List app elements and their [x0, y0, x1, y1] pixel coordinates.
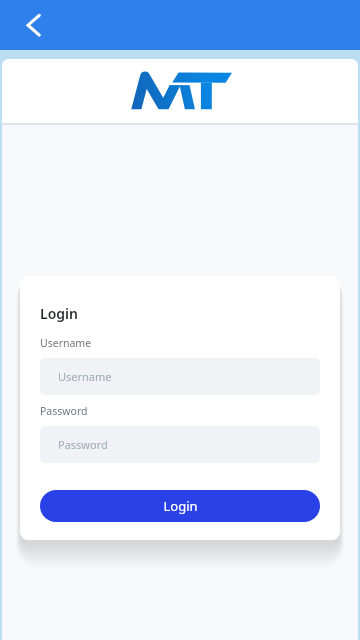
button[interactable]: Back — [9, 3, 53, 47]
button[interactable]: Username — [40, 358, 320, 395]
staticText: Login — [40, 304, 78, 323]
staticText: Password — [58, 437, 108, 452]
staticText: Login — [163, 497, 198, 515]
button[interactable]: Login — [40, 490, 320, 522]
button[interactable]: Password — [40, 426, 320, 463]
staticText: Username — [40, 336, 92, 350]
staticText: Password — [40, 404, 88, 418]
staticText: Username — [58, 369, 112, 384]
